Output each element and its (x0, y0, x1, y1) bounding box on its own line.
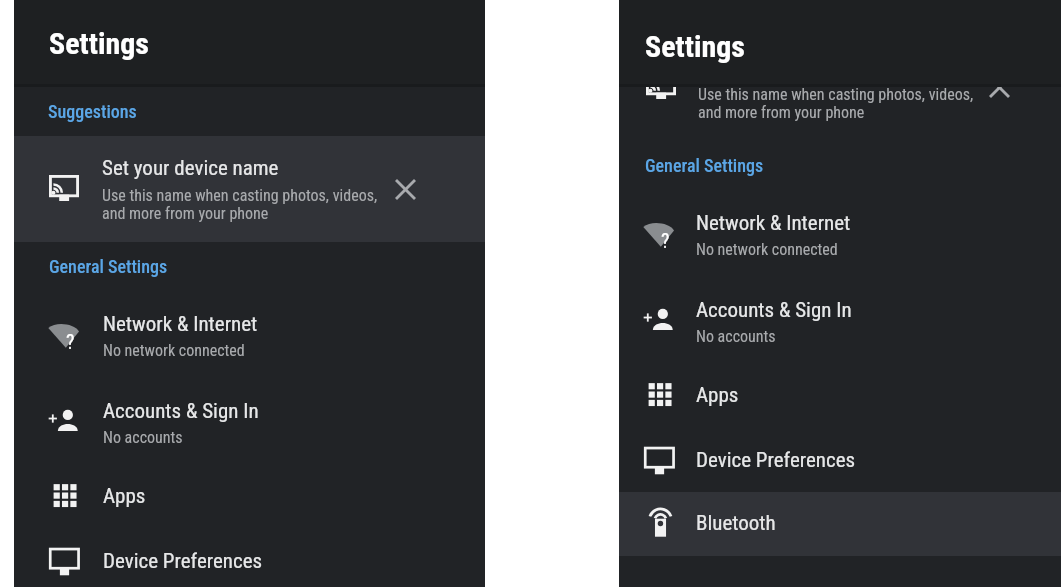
staticText: No network connected (103, 341, 245, 360)
staticText: Network & Internet (103, 312, 258, 337)
staticText: ? (661, 229, 670, 252)
staticText: Suggestions (48, 101, 137, 122)
staticText: Bluetooth (696, 511, 776, 536)
button[interactable]: Dismiss suggestion (381, 165, 429, 213)
staticText: Set your device name (102, 156, 279, 181)
staticText: No network connected (696, 240, 838, 259)
staticText: Settings (49, 26, 149, 61)
staticText: ? (66, 330, 75, 353)
staticText: No accounts (696, 327, 776, 346)
button[interactable] (619, 35, 1061, 141)
staticText: Accounts & Sign In (103, 399, 259, 424)
button[interactable]: Apps (14, 464, 485, 529)
staticText: Network & Internet (696, 211, 851, 236)
staticText: Accounts & Sign In (696, 298, 852, 323)
staticText: Use this name when casting photos, video… (102, 186, 378, 223)
staticText: Device Preferences (696, 448, 856, 473)
button[interactable]: Bluetooth (619, 492, 1061, 556)
button[interactable]: ? (619, 189, 1061, 276)
staticText: General Settings (645, 155, 764, 176)
button[interactable]: Apps (619, 363, 1061, 428)
button[interactable]: Dismiss suggestion (975, 63, 1023, 111)
staticText: General Settings (49, 256, 168, 277)
button[interactable]: ? (14, 290, 485, 377)
button[interactable]: Device Preferences (619, 428, 1061, 493)
staticText: No accounts (103, 428, 183, 447)
staticText: Use this name when casting photos, video… (698, 85, 974, 122)
button[interactable]: Accounts & Sign In (619, 276, 1061, 363)
staticText: Device Preferences (103, 549, 263, 574)
other: Cast (646, 73, 676, 99)
staticText: Settings (645, 29, 745, 64)
staticText: Set your device name (698, 54, 875, 79)
button[interactable] (14, 136, 485, 242)
button[interactable]: Device Preferences (14, 529, 485, 587)
staticText: Apps (103, 484, 146, 509)
staticText: Apps (696, 383, 739, 408)
other: Cast (49, 175, 79, 201)
button[interactable]: Accounts & Sign In (14, 377, 485, 464)
